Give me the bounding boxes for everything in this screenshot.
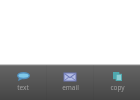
staticText: copy xyxy=(110,83,125,92)
button[interactable]: Send email xyxy=(47,65,93,100)
staticText: email xyxy=(62,83,79,92)
button[interactable]: Send text message xyxy=(0,65,46,100)
button[interactable]: Copy xyxy=(94,65,140,100)
staticText: text xyxy=(17,83,29,92)
